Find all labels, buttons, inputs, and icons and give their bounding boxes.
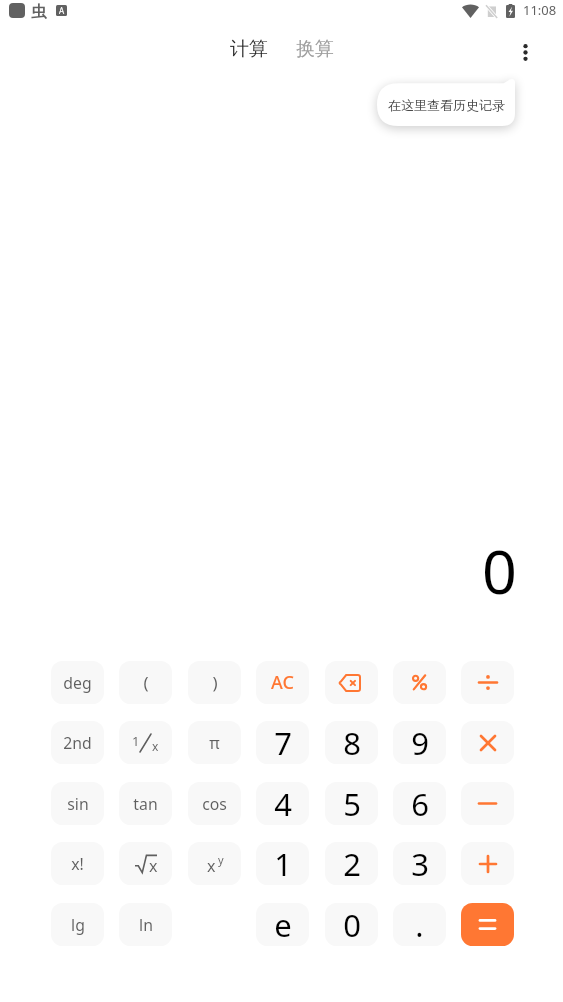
button[interactable]: sin xyxy=(51,782,104,825)
staticText: 3 xyxy=(411,843,429,885)
staticText: x xyxy=(152,738,159,754)
button[interactable]: 0 xyxy=(325,903,378,946)
button[interactable]: ) xyxy=(188,661,241,704)
staticText: . xyxy=(415,904,424,946)
button[interactable]: 3 xyxy=(393,842,446,885)
button[interactable]: ( xyxy=(119,661,172,704)
button[interactable]: 6 xyxy=(393,782,446,825)
staticText: 1 xyxy=(274,843,292,885)
button[interactable]: Backspace xyxy=(325,661,378,704)
staticText: ( xyxy=(143,671,149,694)
staticText: 2 xyxy=(343,843,361,885)
staticText: sin xyxy=(67,793,89,815)
staticText: tan xyxy=(133,793,158,815)
staticText: y xyxy=(218,852,224,867)
button[interactable]: deg xyxy=(51,661,104,704)
button[interactable]: cos xyxy=(188,782,241,825)
button[interactable]: Plus xyxy=(461,842,514,885)
button[interactable]: Equals xyxy=(461,903,514,946)
button[interactable]: tan xyxy=(119,782,172,825)
button[interactable]: 在这里查看历史记录 xyxy=(377,79,515,126)
button[interactable]: 换算 xyxy=(290,27,340,71)
button[interactable]: x! xyxy=(51,842,104,885)
staticText: deg xyxy=(63,672,92,694)
button[interactable]: 2nd xyxy=(51,721,104,764)
button[interactable]: 1 xyxy=(256,842,309,885)
staticText: ) xyxy=(212,671,218,694)
staticText: 0 xyxy=(482,529,517,612)
button[interactable]: 8 xyxy=(325,721,378,764)
staticText: A xyxy=(59,5,65,16)
staticText: π xyxy=(209,732,220,754)
button[interactable]: 2 xyxy=(325,842,378,885)
button[interactable]: 1 xyxy=(119,721,172,764)
button[interactable]: Divide xyxy=(461,661,514,704)
staticText: 4 xyxy=(274,783,292,825)
staticText: e xyxy=(274,904,292,946)
button[interactable]: 7 xyxy=(256,721,309,764)
staticText: 2nd xyxy=(63,732,92,754)
staticText: 6 xyxy=(411,783,429,825)
button[interactable]: More options xyxy=(511,38,539,66)
staticText: 0 xyxy=(343,904,361,946)
staticText: x! xyxy=(71,853,84,875)
staticText: x xyxy=(149,855,158,874)
button[interactable]: lg xyxy=(51,903,104,946)
staticText: x xyxy=(207,855,216,873)
staticText: 8 xyxy=(343,722,361,764)
staticText: ln xyxy=(139,914,153,936)
button[interactable]: Multiply xyxy=(461,721,514,764)
staticText: 7 xyxy=(274,722,292,764)
button[interactable]: 计算 xyxy=(224,27,274,71)
button[interactable]: Percent xyxy=(393,661,446,704)
staticText: 换算 xyxy=(296,37,334,61)
staticText: 11:08 xyxy=(523,1,557,19)
staticText: 9 xyxy=(411,722,429,764)
button[interactable]: . xyxy=(393,903,446,946)
button[interactable]: 4 xyxy=(256,782,309,825)
staticText: cos xyxy=(202,793,227,815)
staticText: 在这里查看历史记录 xyxy=(388,97,505,113)
button[interactable]: ln xyxy=(119,903,172,946)
button[interactable]: Minus xyxy=(461,782,514,825)
staticText: lg xyxy=(71,914,85,936)
staticText: 虫 xyxy=(31,2,47,22)
button[interactable]: x xyxy=(188,842,241,885)
staticText: AC xyxy=(271,670,294,695)
staticText: 计算 xyxy=(230,37,268,61)
button[interactable]: 5 xyxy=(325,782,378,825)
button[interactable]: x xyxy=(119,842,172,885)
button[interactable]: AC xyxy=(256,661,309,704)
staticText: 1 xyxy=(132,732,140,750)
button[interactable]: e xyxy=(256,903,309,946)
staticText: 5 xyxy=(343,783,361,825)
button[interactable]: π xyxy=(188,721,241,764)
button[interactable]: 9 xyxy=(393,721,446,764)
